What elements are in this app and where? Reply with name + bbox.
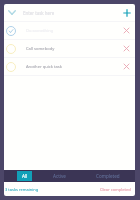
button[interactable]: 3 tasks remaining bbox=[5, 187, 39, 192]
staticText: Another quick task bbox=[26, 64, 62, 70]
button[interactable]: All bbox=[17, 171, 32, 181]
button[interactable]: Add task bbox=[120, 4, 134, 21]
button[interactable]: Clear completed bbox=[100, 187, 131, 192]
button[interactable]: Toggle task bbox=[4, 40, 135, 57]
staticText: 3 tasks remaining bbox=[5, 187, 39, 192]
staticText: Do something bbox=[26, 28, 54, 34]
staticText: Clear completed bbox=[100, 187, 131, 192]
button[interactable]: Toggle task bbox=[4, 58, 18, 75]
staticText: Completed bbox=[96, 173, 120, 179]
button[interactable]: Toggle task bbox=[4, 22, 135, 39]
button[interactable]: Active bbox=[53, 171, 66, 181]
staticText: Call somebody bbox=[26, 46, 55, 52]
button[interactable]: Delete task bbox=[118, 40, 134, 57]
button[interactable]: Toggle task bbox=[4, 58, 135, 75]
button[interactable]: Completed bbox=[96, 171, 120, 181]
staticText: All bbox=[22, 173, 28, 179]
button[interactable]: Toggle task bbox=[4, 22, 18, 39]
button[interactable]: Delete task bbox=[118, 22, 134, 39]
button[interactable]: Toggle all tasks bbox=[4, 4, 19, 21]
button[interactable]: Toggle all tasks bbox=[4, 4, 135, 21]
staticText: Enter task here bbox=[23, 10, 55, 16]
staticText: Active bbox=[53, 173, 66, 179]
button[interactable]: Delete task bbox=[118, 58, 134, 75]
button[interactable]: Toggle task bbox=[4, 40, 18, 57]
